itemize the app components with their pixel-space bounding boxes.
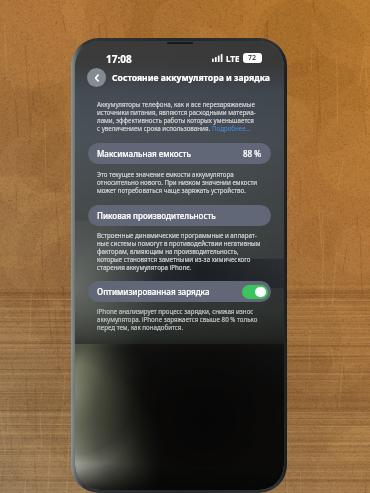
staticText: факторам, влияющим на производительность… (97, 247, 239, 255)
staticText: Максимальная емкость (97, 148, 191, 159)
staticText: которые становятся заметными из-за химич… (97, 255, 251, 263)
staticText: ные системы помогут в противодействии не… (97, 239, 261, 247)
staticText: с увеличением срока использования. (97, 124, 212, 132)
staticText: Пиковая производительность (97, 210, 216, 221)
button[interactable]: Максимальная емкость (88, 143, 271, 164)
staticText: перед тем, как понадобится. (97, 323, 184, 331)
staticText: Аккумуляторы телефона, как и все перезар… (97, 100, 255, 108)
button[interactable]: Пиковая производительность (88, 205, 271, 226)
staticText: 88 % (243, 148, 262, 159)
staticText: 17:08 (106, 52, 132, 64)
staticText: iPhone анализирует процесс зарядки, сниж… (97, 307, 254, 315)
staticText: Состояние аккумулятора и зарядка (112, 72, 270, 84)
staticText: Оптимизированная зарядка (97, 286, 210, 297)
staticText: старения аккумулятора iPhone. (97, 263, 192, 271)
staticText: источники питания, являются расходными м… (97, 108, 256, 116)
staticText: Встроенные динамические программные и ап… (97, 231, 257, 239)
button[interactable]: Back (87, 68, 106, 87)
staticText: лами, эффективность работы которых умень… (97, 116, 254, 124)
staticText: может потребоваться чаще заряжать устрой… (97, 186, 246, 194)
staticText: LTE (226, 53, 240, 64)
staticText: Это текущее значение емкости аккумулятор… (97, 170, 234, 178)
staticText: аккумулятора. iPhone заряжается свыше 80… (97, 315, 258, 323)
staticText: Подробнее... (212, 124, 251, 132)
button[interactable]: Оптимизированная зарядка (88, 281, 271, 302)
button[interactable]: Optimized charging toggle (242, 285, 268, 299)
staticText: 72 (248, 53, 257, 63)
staticText: относительно нового. При низком значении… (97, 178, 258, 186)
